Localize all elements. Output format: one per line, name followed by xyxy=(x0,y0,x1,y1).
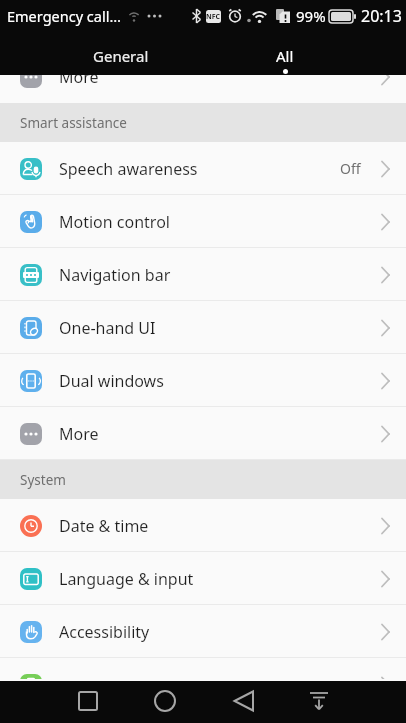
button[interactable]: All xyxy=(225,32,345,75)
button[interactable]: Date & time xyxy=(0,499,406,552)
staticText: All xyxy=(276,46,294,66)
button[interactable] xyxy=(297,681,341,723)
button[interactable]: Dual windows xyxy=(0,354,406,407)
button[interactable]: General xyxy=(61,32,181,75)
button[interactable] xyxy=(66,681,110,723)
button[interactable]: Accessibility xyxy=(0,605,406,658)
staticText: NFC xyxy=(206,12,221,22)
button[interactable]: Speech awareness xyxy=(0,142,406,195)
staticText: Smart assistance xyxy=(20,114,127,132)
staticText: Emergency call… xyxy=(7,6,121,26)
staticText: 20:13 xyxy=(361,5,402,27)
staticText: More xyxy=(59,423,99,445)
staticText: General xyxy=(93,46,149,66)
button[interactable]: Navigation bar xyxy=(0,248,406,301)
button[interactable]: More xyxy=(0,75,406,103)
staticText: More xyxy=(59,75,99,88)
staticText: Navigation bar xyxy=(59,264,171,286)
staticText: Language & input xyxy=(59,568,194,590)
button[interactable]: Printing xyxy=(0,658,406,679)
button[interactable] xyxy=(222,681,266,723)
staticText: One-hand UI xyxy=(59,317,156,339)
staticText: Motion control xyxy=(59,211,170,233)
staticText: Accessibility xyxy=(59,621,150,643)
button[interactable] xyxy=(143,681,187,723)
button[interactable]: Motion control xyxy=(0,195,406,248)
button[interactable]: More xyxy=(0,407,406,460)
button[interactable]: Language & input xyxy=(0,552,406,605)
button[interactable]: One-hand UI xyxy=(0,301,406,354)
staticText: 99% xyxy=(296,6,326,26)
staticText: System xyxy=(20,471,66,489)
staticText: Date & time xyxy=(59,515,149,537)
staticText: Dual windows xyxy=(59,370,164,392)
staticText: Off xyxy=(340,159,361,178)
staticText: Speech awareness xyxy=(59,158,198,180)
